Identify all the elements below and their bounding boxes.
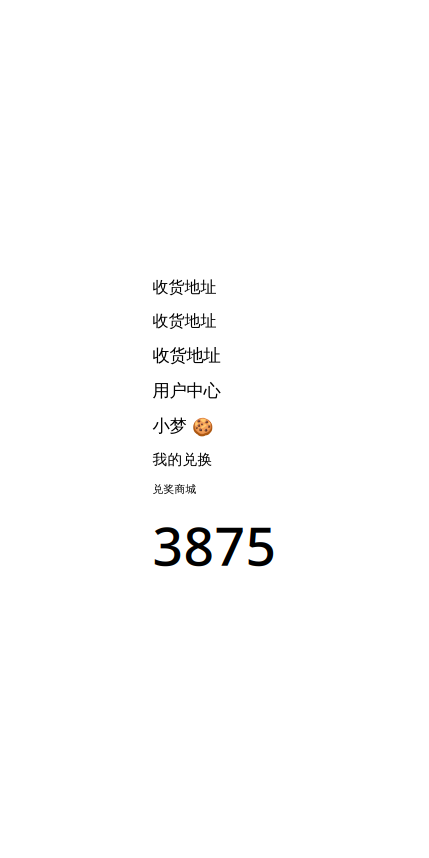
staticText: 小梦 🍪 <box>152 415 213 437</box>
staticText: 兑奖商城 <box>152 483 196 496</box>
staticText: 3875 <box>152 510 276 580</box>
staticText: 用户中心 <box>152 380 220 401</box>
staticText: 收货地址 <box>152 277 216 297</box>
staticText: 收货地址 <box>152 345 220 366</box>
staticText: 我的兑换 <box>152 451 212 469</box>
staticText: 收货地址 <box>152 311 216 331</box>
